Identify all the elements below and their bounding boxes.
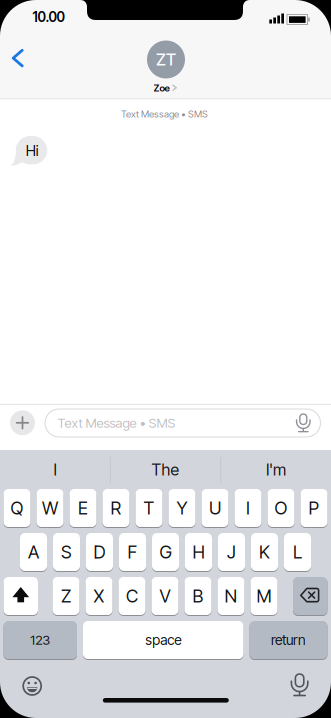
staticText: K [259,541,270,563]
button[interactable]: X [85,576,112,615]
staticText: P [308,497,319,519]
button[interactable]: B [184,576,211,615]
button[interactable]: Back [0,0,34,34]
button[interactable]: Z [52,576,79,615]
button[interactable]: I'm [224,454,328,486]
button[interactable]: The [113,454,217,486]
button[interactable]: P [300,488,327,527]
button[interactable]: Zoe contact info [147,40,185,78]
button[interactable]: H [185,532,212,571]
button[interactable]: J [218,532,245,571]
staticText: Z [61,585,71,607]
button[interactable]: R [102,488,129,527]
staticText: J [227,541,236,563]
button[interactable]: F [119,532,146,571]
button[interactable]: Delete [293,576,327,615]
staticText: return [271,631,306,648]
staticText: D [93,541,105,563]
staticText: X [93,585,104,607]
staticText: S [61,541,72,563]
button[interactable]: Add attachment [10,410,35,435]
staticText: Y [176,497,187,519]
button[interactable]: L [284,532,311,571]
button[interactable]: Text Message SMS input field [45,409,320,437]
staticText: Text Message • SMS [58,415,176,431]
button[interactable]: E [69,488,96,527]
button[interactable]: G [152,532,179,571]
button[interactable]: I [3,454,107,486]
staticText: Hi [26,142,39,159]
button[interactable]: Shift [3,576,38,615]
staticText: Zoe [154,82,170,94]
staticText: N [224,585,237,607]
button[interactable]: return [249,620,327,659]
button[interactable]: C [118,576,145,615]
staticText: T [143,497,154,519]
button[interactable]: Q [3,488,30,527]
staticText: 10.00 [32,9,64,25]
button[interactable]: A [20,532,47,571]
button[interactable]: D [86,532,113,571]
staticText: I'm [266,460,286,479]
staticText: The [151,460,179,479]
staticText: L [293,541,302,563]
staticText: O [274,497,287,519]
staticText: E [78,497,88,519]
staticText: Text Message • SMS [121,108,208,120]
staticText: U [209,497,221,519]
button[interactable]: W [36,488,63,527]
button[interactable]: U [201,488,228,527]
button[interactable]: K [251,532,278,571]
button[interactable]: O [267,488,294,527]
staticText: C [126,585,138,607]
button[interactable]: I [234,488,261,527]
staticText: R [110,497,121,519]
staticText: space [145,631,181,648]
button[interactable]: V [151,576,178,615]
staticText: Q [10,497,23,519]
button[interactable]: space [83,620,243,659]
staticText: I [53,460,56,479]
button[interactable]: Dictation [284,672,315,699]
staticText: I [246,497,250,519]
staticText: A [28,541,39,563]
staticText: 123 [30,632,50,648]
button[interactable]: 123 [3,620,77,659]
button[interactable]: Y [168,488,195,527]
staticText: M [256,585,271,607]
staticText: F [127,541,137,563]
staticText: B [192,585,203,607]
staticText: V [159,585,170,607]
button[interactable]: S [53,532,80,571]
staticText: ZT [156,49,176,69]
button[interactable]: M [250,576,277,615]
button[interactable]: Emoji [18,672,46,699]
button[interactable]: T [135,488,162,527]
staticText: G [159,541,171,563]
button[interactable]: N [217,576,244,615]
staticText: H [192,541,204,563]
staticText: W [42,497,58,519]
